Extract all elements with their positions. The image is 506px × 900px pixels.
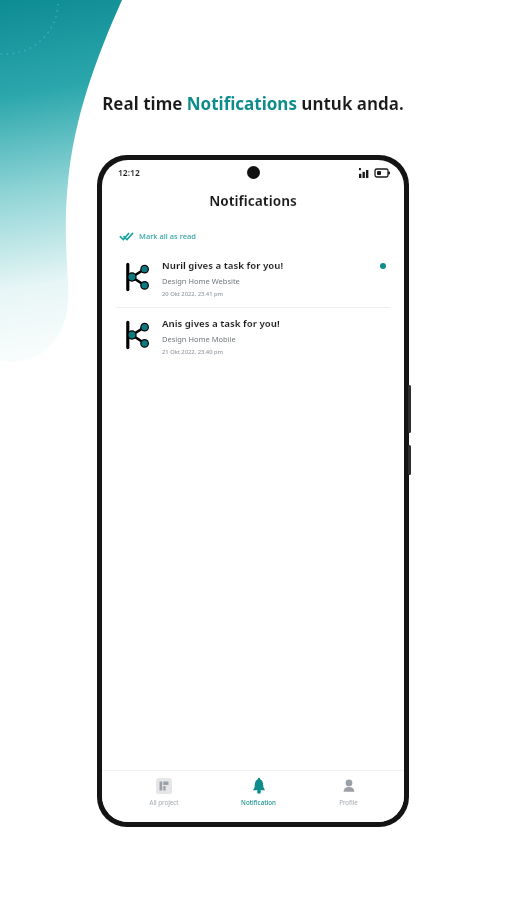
staticText: Notifications [209, 192, 297, 210]
button[interactable]: Anis gives a task for you! [102, 308, 404, 365]
staticText: Design Home Mobile [162, 334, 236, 344]
staticText: Nuril gives a task for you! [162, 259, 284, 272]
other: All project [156, 778, 172, 794]
button[interactable]: All project [133, 776, 195, 808]
staticText: All project [149, 798, 179, 806]
button[interactable]: Profile [323, 776, 374, 808]
staticText: Profile [339, 798, 358, 806]
other: Profile [341, 778, 357, 794]
button[interactable]: Notification [225, 776, 292, 808]
staticText: Design Home Website [162, 276, 240, 286]
staticText: 12:12 [118, 167, 140, 179]
button[interactable]: Mark all as read [118, 228, 198, 244]
staticText: 20 Okt 2022, 23.41 pm [162, 290, 223, 298]
staticText: Real time Notifications untuk anda. [102, 92, 404, 115]
staticText: Notification [241, 798, 276, 806]
other: Notification [251, 778, 267, 794]
staticText: Mark all as read [139, 231, 196, 241]
button[interactable]: Nuril gives a task for you! [102, 250, 404, 307]
staticText: 21 Okt 2022, 23.40 pm [162, 348, 223, 356]
staticText: Anis gives a task for you! [162, 317, 280, 330]
